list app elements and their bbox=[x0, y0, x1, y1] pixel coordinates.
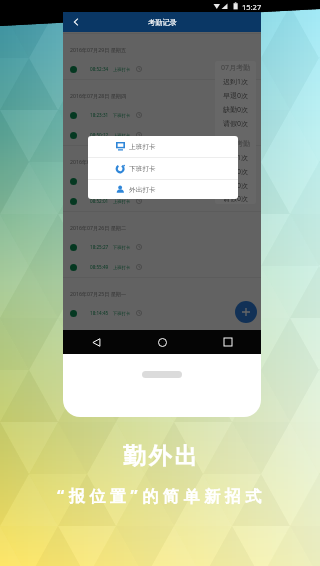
staticText: 上班打卡 bbox=[113, 133, 131, 138]
staticText: 上班打卡 bbox=[129, 143, 156, 151]
staticText: 08:55:49 bbox=[90, 264, 109, 270]
staticText: 考勤记录 bbox=[148, 18, 177, 27]
staticText: 下班打卡 bbox=[113, 311, 131, 316]
staticText: 下班打卡 bbox=[113, 245, 131, 250]
button[interactable]: 18:23:31 bbox=[63, 105, 261, 125]
staticText: 2016年07月29日 星期五 bbox=[70, 46, 127, 53]
staticText: 2016年07月25日 星期一 bbox=[70, 290, 127, 297]
staticText: 请假0次 bbox=[223, 119, 249, 129]
staticText: 迟到1次 bbox=[223, 77, 249, 87]
button[interactable]: 下班打卡 bbox=[88, 158, 238, 179]
staticText: 2016年07月27日 星期三 bbox=[70, 158, 127, 165]
staticText: 早退0次 bbox=[223, 91, 249, 101]
button[interactable]: Home bbox=[129, 330, 195, 354]
button[interactable]: 上班打卡 bbox=[88, 136, 238, 157]
button[interactable]: 08:50:12 bbox=[63, 125, 261, 145]
staticText: 2016年07月28日 星期四 bbox=[70, 92, 127, 99]
staticText: 缺勤0次 bbox=[223, 105, 249, 115]
staticText: 早退0次 bbox=[223, 167, 249, 177]
staticText: 下班打卡 bbox=[113, 179, 131, 184]
staticText: 上班打卡 bbox=[113, 199, 131, 204]
button[interactable]: 18:14:45 bbox=[63, 303, 261, 323]
staticText: 外出打卡 bbox=[129, 186, 156, 194]
staticText: 18:25:27 bbox=[90, 244, 109, 250]
button[interactable]: Back bbox=[70, 16, 82, 28]
button[interactable]: Back bbox=[63, 330, 129, 354]
staticText: 18:23:31 bbox=[90, 112, 109, 118]
button[interactable]: 08:52:34 bbox=[63, 59, 261, 79]
button[interactable]: Add record bbox=[235, 301, 257, 323]
button[interactable]: 18:25:27 bbox=[63, 237, 261, 257]
staticText: 08:50:12 bbox=[90, 132, 109, 138]
staticText: 勤外出 bbox=[123, 442, 201, 471]
staticText: 上班打卡 bbox=[113, 67, 131, 72]
button[interactable]: 外出打卡 bbox=[88, 180, 238, 199]
staticText: 15:27 bbox=[242, 2, 262, 12]
staticText: 下班打卡 bbox=[129, 165, 156, 173]
staticText: 18:14:45 bbox=[90, 310, 109, 316]
button[interactable]: 18:20:01 bbox=[63, 171, 261, 191]
staticText: 06月考勤 bbox=[221, 139, 251, 149]
staticText: 下班打卡 bbox=[113, 113, 131, 118]
button[interactable]: Recent apps bbox=[195, 330, 261, 354]
staticText: 18:20:01 bbox=[90, 178, 109, 184]
staticText: 缺勤0次 bbox=[223, 181, 249, 191]
button[interactable]: 08:52:01 bbox=[63, 191, 261, 211]
button[interactable]: Home button bbox=[142, 371, 182, 378]
staticText: 迟到1次 bbox=[223, 153, 249, 163]
staticText: 08:52:01 bbox=[90, 198, 109, 204]
staticText: 07月考勤 bbox=[221, 63, 251, 73]
staticText: 08:52:34 bbox=[90, 66, 109, 72]
staticText: 2016年07月26日 星期二 bbox=[70, 224, 127, 231]
staticText: “报位置”的简单新招式 bbox=[57, 485, 266, 507]
button[interactable]: 08:55:49 bbox=[63, 257, 261, 277]
staticText: 请假0次 bbox=[223, 194, 249, 204]
staticText: 上班打卡 bbox=[113, 265, 131, 270]
